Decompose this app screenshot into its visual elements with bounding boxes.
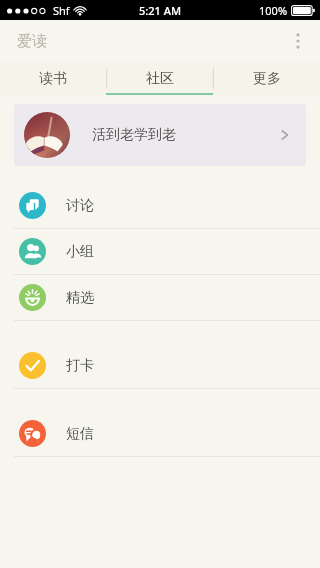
- staticText: 读书: [39, 70, 67, 88]
- button[interactable]: 更多: [213, 62, 320, 95]
- staticText: 爱读: [17, 32, 47, 51]
- button[interactable]: 读书: [0, 62, 106, 95]
- staticText: 5:21 AM: [139, 3, 182, 18]
- staticText: 短信: [66, 425, 94, 443]
- staticText: Shf: [53, 3, 70, 18]
- button[interactable]: 小组: [0, 229, 320, 274]
- button[interactable]: 精选: [0, 275, 320, 320]
- button[interactable]: 打卡: [0, 343, 320, 388]
- staticText: 讨论: [66, 197, 94, 215]
- button[interactable]: 讨论: [0, 183, 320, 228]
- staticText: 精选: [66, 289, 94, 307]
- staticText: 活到老学到老: [92, 126, 176, 144]
- button[interactable]: 活到老学到老: [14, 104, 306, 166]
- staticText: 小组: [66, 243, 94, 261]
- staticText: 打卡: [66, 357, 94, 375]
- staticText: 100%: [259, 3, 288, 18]
- button[interactable]: 社区: [106, 62, 213, 95]
- staticText: 更多: [253, 70, 281, 88]
- staticText: 社区: [146, 70, 174, 88]
- button[interactable]: 短信: [0, 411, 320, 456]
- button[interactable]: More options: [276, 20, 320, 62]
